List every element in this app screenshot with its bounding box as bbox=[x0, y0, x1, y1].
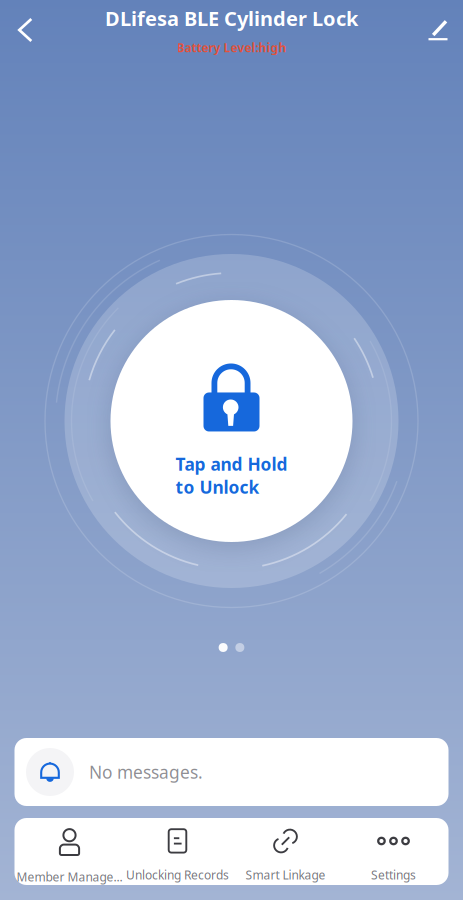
button[interactable]: Smart Linkage bbox=[231, 818, 339, 885]
button[interactable]: No messages. bbox=[14, 738, 448, 806]
staticText: Unlocking Records bbox=[126, 867, 229, 883]
staticText: Battery Level:high bbox=[176, 40, 286, 55]
button[interactable]: Back bbox=[0, 0, 48, 56]
staticText: Settings bbox=[371, 867, 416, 883]
button[interactable]: Edit bbox=[415, 0, 463, 56]
staticText: No messages. bbox=[89, 760, 203, 783]
button[interactable]: Unlocking Records bbox=[123, 818, 231, 885]
button[interactable]: Member Manage... bbox=[15, 818, 123, 885]
staticText: DLifesa BLE Cylinder Lock bbox=[105, 5, 358, 32]
staticText: Smart Linkage bbox=[245, 867, 325, 883]
staticText: Tap and Hold to Unlock bbox=[175, 452, 287, 498]
button[interactable]: Tap and Hold to Unlock bbox=[110, 300, 352, 542]
button[interactable]: Settings bbox=[339, 818, 447, 885]
staticText: Member Manage... bbox=[16, 869, 122, 885]
